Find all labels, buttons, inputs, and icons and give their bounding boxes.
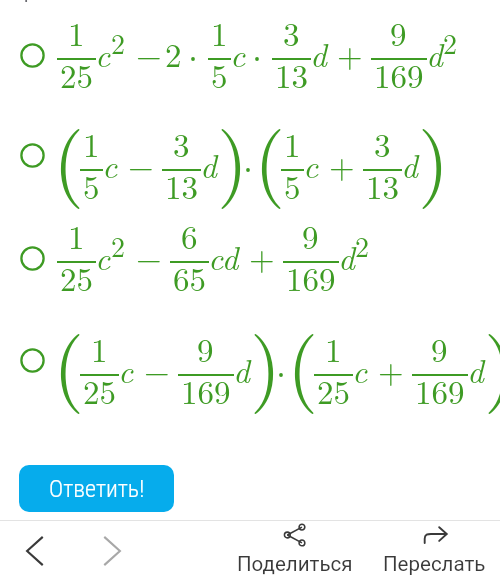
staticText: − (128, 141, 154, 188)
staticText: 5 (83, 162, 100, 209)
staticText: 1 (68, 212, 85, 259)
staticText: 5 (211, 51, 228, 98)
staticText: d (310, 30, 327, 77)
button[interactable]: Переслать (383, 523, 486, 576)
staticText: 5 (284, 162, 301, 209)
staticText: 1 (68, 9, 85, 56)
staticText: d (233, 346, 250, 393)
staticText: + (378, 346, 404, 393)
staticText: d (426, 30, 443, 77)
staticText: + (329, 141, 355, 188)
staticText: d (338, 233, 355, 280)
staticText: Переслать (383, 552, 486, 576)
staticText: c (230, 30, 246, 77)
staticText: c (118, 346, 134, 393)
staticText: d (200, 141, 217, 188)
staticText: c (95, 233, 111, 280)
staticText: разложите на множители (24, 0, 253, 2)
staticText: ( (53, 304, 85, 417)
staticText: 13 (366, 162, 399, 209)
button[interactable]: ( (0, 313, 500, 407)
staticText: ( (254, 99, 286, 212)
staticText: 25 (60, 254, 93, 301)
staticText: ) (418, 99, 450, 212)
staticText: + (249, 233, 275, 280)
staticText: 9 (197, 325, 214, 372)
staticText: 9 (302, 212, 319, 259)
staticText: 13 (165, 162, 198, 209)
staticText: 1 (325, 325, 342, 372)
staticText: 169 (374, 51, 424, 98)
button[interactable]: 1 (0, 211, 500, 305)
staticText: 1 (83, 120, 100, 167)
button[interactable]: ( (0, 108, 500, 202)
staticText: c (95, 30, 111, 77)
staticText: Поделиться (237, 552, 353, 576)
staticText: 169 (181, 367, 231, 414)
staticText: − (144, 346, 170, 393)
staticText: cd (208, 233, 239, 280)
staticText: 3 (173, 120, 190, 167)
staticText: ) (250, 304, 282, 417)
staticText: 25 (60, 51, 93, 98)
staticText: Ответить! (49, 475, 145, 503)
staticText: 65 (173, 254, 206, 301)
staticText: ( (53, 99, 85, 212)
staticText: 13 (275, 51, 308, 98)
staticText: 3 (283, 9, 300, 56)
staticText: 9 (431, 325, 448, 372)
staticText: − (136, 233, 162, 280)
staticText: 169 (415, 367, 465, 414)
staticText: d (401, 141, 418, 188)
staticText: ) (484, 304, 500, 417)
staticText: 2 (111, 225, 126, 265)
staticText: 3 (374, 120, 391, 167)
button[interactable]: Back (11, 536, 59, 566)
staticText: + (337, 30, 363, 77)
staticText: 1 (211, 9, 228, 56)
staticText: 1 (91, 325, 108, 372)
staticText: 1 (284, 120, 301, 167)
staticText: 2 (443, 22, 458, 62)
staticText: 169 (286, 254, 336, 301)
staticText: d (467, 346, 484, 393)
staticText: 2 (355, 225, 370, 265)
staticText: 6 (181, 212, 198, 259)
button[interactable]: Forward (88, 536, 136, 566)
button[interactable]: 1 (0, 8, 500, 102)
staticText: 25 (317, 367, 350, 414)
staticText: 9 (390, 9, 407, 56)
staticText: ( (287, 304, 319, 417)
staticText: 2 (165, 30, 182, 77)
staticText: c (303, 141, 319, 188)
staticText: 2 (111, 22, 126, 62)
staticText: ) (217, 99, 249, 212)
staticText: − (136, 30, 162, 77)
button[interactable]: Ответить! (19, 465, 174, 512)
staticText: 25 (83, 367, 116, 414)
staticText: c (352, 346, 368, 393)
staticText: c (102, 141, 118, 188)
button[interactable]: Поделиться (237, 523, 353, 576)
